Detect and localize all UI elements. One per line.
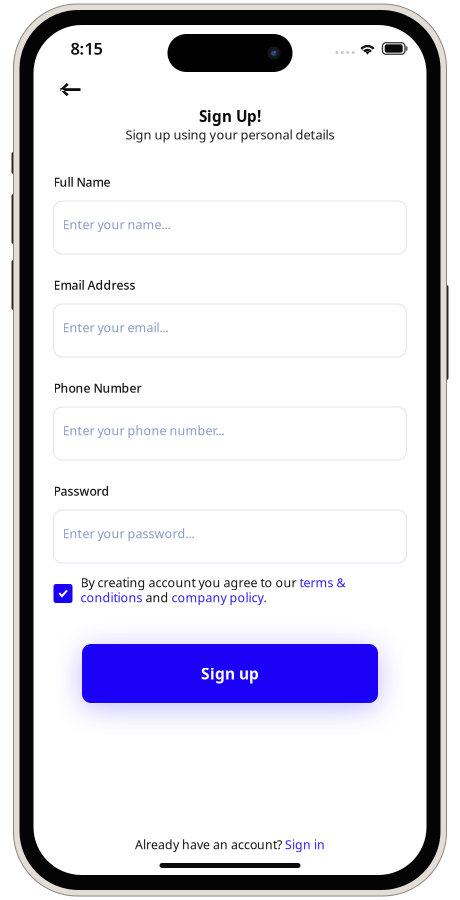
staticText: Sign up using your personal details [125, 126, 334, 143]
staticText: Enter your name... [62, 216, 170, 233]
staticText: conditions [80, 589, 142, 606]
staticText: Already have an account? [135, 836, 285, 853]
staticText: Enter your email... [62, 319, 168, 336]
staticText: Password [53, 483, 109, 499]
staticText: Sign Up! [199, 106, 261, 126]
button[interactable]: Sign up [82, 644, 378, 703]
staticText: and [142, 589, 171, 606]
staticText: Sign in [285, 836, 325, 853]
staticText: Email Address [53, 277, 135, 293]
staticText: Phone Number [53, 380, 141, 396]
staticText: Enter your phone number... [62, 422, 224, 439]
staticText: By creating account you agree to our [80, 574, 299, 591]
button[interactable]: conditions [80, 589, 142, 606]
button[interactable]: Back [59, 78, 95, 102]
button[interactable]: Agree to terms and conditions [53, 575, 72, 603]
staticText: company policy. [171, 589, 266, 606]
button[interactable]: company policy. [171, 589, 266, 606]
button[interactable]: terms & [299, 574, 345, 591]
staticText: 8:15 [70, 37, 102, 60]
staticText: terms & [299, 574, 345, 591]
button[interactable]: Sign in [285, 836, 325, 853]
staticText: Full Name [53, 174, 110, 190]
staticText: Enter your password... [62, 525, 194, 542]
staticText: Sign up [201, 663, 259, 684]
